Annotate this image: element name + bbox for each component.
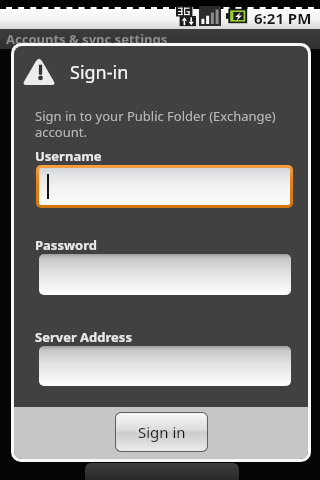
staticText: Server Address <box>35 328 132 346</box>
staticText: Sign in to your Public Folder (Exchange)… <box>35 107 298 140</box>
staticText: Sign in <box>138 422 186 442</box>
button[interactable] <box>39 254 291 295</box>
button[interactable]: Sign in <box>116 413 207 451</box>
staticText: Sign-in <box>70 60 129 85</box>
staticText: Username <box>35 147 102 165</box>
staticText: Accounts & sync settings <box>6 30 168 48</box>
button[interactable] <box>39 346 291 386</box>
staticText: Password <box>35 236 97 254</box>
staticText: 6:21 PM <box>254 8 312 28</box>
button[interactable] <box>39 168 290 205</box>
